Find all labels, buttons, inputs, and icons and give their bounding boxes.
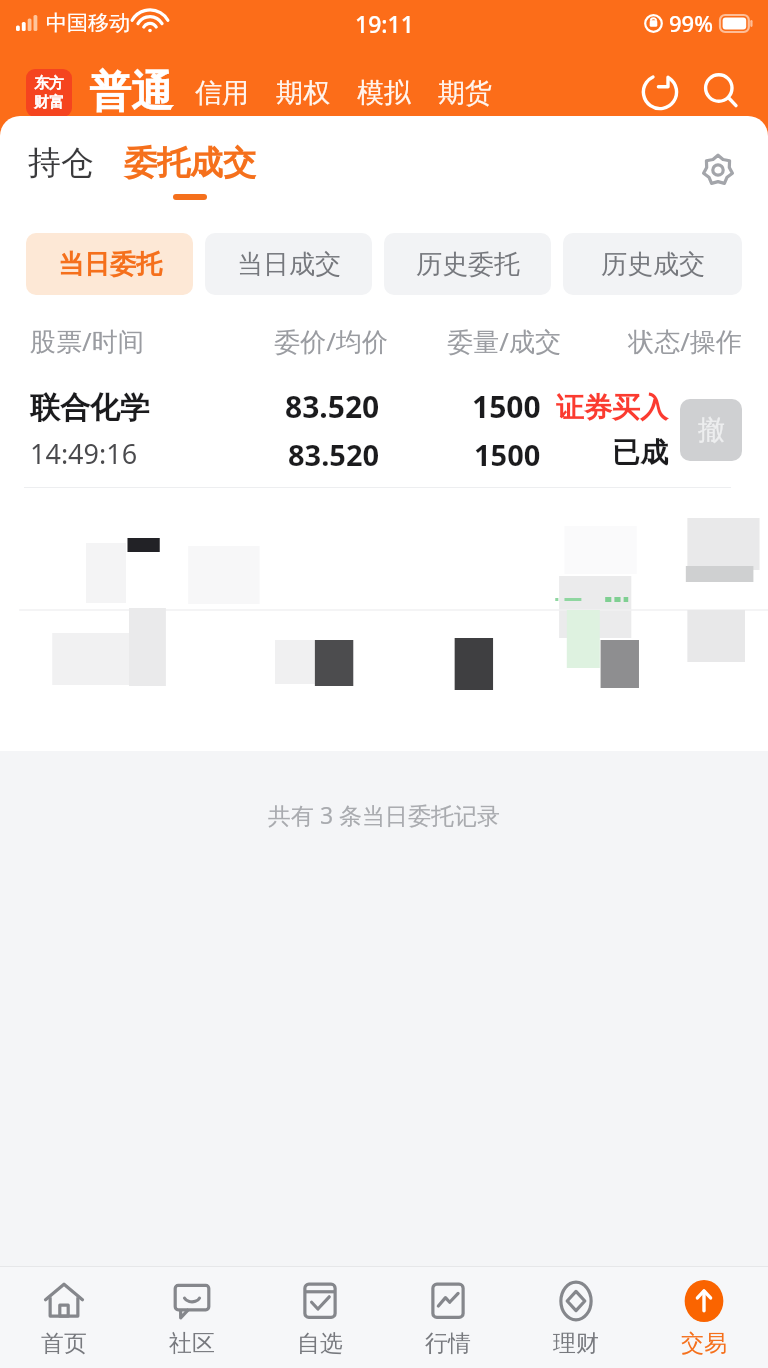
- button[interactable]: 信用: [195, 76, 249, 110]
- staticText: 状态/操作: [561, 323, 742, 359]
- button[interactable]: 当日成交: [205, 233, 372, 295]
- button[interactable]: 当日委托: [26, 233, 193, 295]
- button[interactable]: 历史委托: [384, 233, 551, 295]
- staticText: 委量/成交: [388, 323, 561, 359]
- staticText: 历史成交: [601, 248, 705, 281]
- staticText: 理财: [553, 1329, 599, 1358]
- staticText: 模拟: [357, 76, 411, 110]
- staticText: 行情: [425, 1329, 471, 1358]
- staticText: 已成: [612, 435, 668, 470]
- button[interactable]: 持仓: [28, 142, 98, 184]
- staticText: 证券买入: [556, 390, 668, 425]
- staticText: 当日委托: [58, 248, 162, 281]
- button[interactable]: 理财: [512, 1267, 640, 1368]
- button[interactable]: 社区: [128, 1267, 256, 1368]
- staticText: 委托成交: [124, 142, 256, 184]
- staticText: 财富: [34, 93, 64, 112]
- staticText: 交易: [681, 1329, 727, 1358]
- staticText: 撤: [698, 413, 725, 447]
- button[interactable]: 行情: [384, 1267, 512, 1368]
- staticText: 中国移动: [46, 10, 130, 36]
- staticText: 1500: [474, 435, 541, 474]
- staticText: 当日成交: [237, 248, 341, 281]
- button[interactable]: 委托成交: [124, 142, 256, 200]
- button[interactable]: Search: [698, 68, 746, 116]
- staticText: 股票/时间: [30, 323, 215, 359]
- staticText: 社区: [169, 1329, 215, 1358]
- staticText: 首页: [41, 1329, 87, 1358]
- button[interactable]: 模拟: [357, 76, 411, 110]
- staticText: 共有 3 条当日委托记录: [0, 799, 768, 830]
- staticText: 信用: [195, 76, 249, 110]
- staticText: 自选: [297, 1329, 343, 1358]
- button[interactable]: 撤: [680, 399, 742, 461]
- button[interactable]: Refresh: [636, 68, 684, 116]
- button[interactable]: Settings: [694, 146, 742, 194]
- staticText: 99%: [669, 8, 713, 38]
- staticText: 委价/均价: [215, 323, 388, 359]
- staticText: 期权: [276, 76, 330, 110]
- staticText: 83.520: [285, 386, 380, 427]
- staticText: 19:11: [355, 8, 414, 39]
- button[interactable]: 期货: [438, 76, 492, 110]
- staticText: 东方: [34, 74, 64, 93]
- staticText: 持仓: [28, 142, 94, 184]
- staticText: 83.520: [288, 435, 380, 474]
- button[interactable]: 期权: [276, 76, 330, 110]
- button[interactable]: 联合化学: [0, 372, 768, 488]
- button[interactable]: 交易: [640, 1267, 768, 1368]
- staticText: 14:49:16: [30, 435, 138, 472]
- button[interactable]: 自选: [256, 1267, 384, 1368]
- staticText: 普通: [89, 66, 173, 119]
- staticText: 1500: [472, 386, 541, 427]
- button[interactable]: 历史成交: [563, 233, 742, 295]
- staticText: 联合化学: [30, 389, 150, 427]
- staticText: 期货: [438, 76, 492, 110]
- staticText: 历史委托: [416, 248, 520, 281]
- button[interactable]: 首页: [0, 1267, 128, 1368]
